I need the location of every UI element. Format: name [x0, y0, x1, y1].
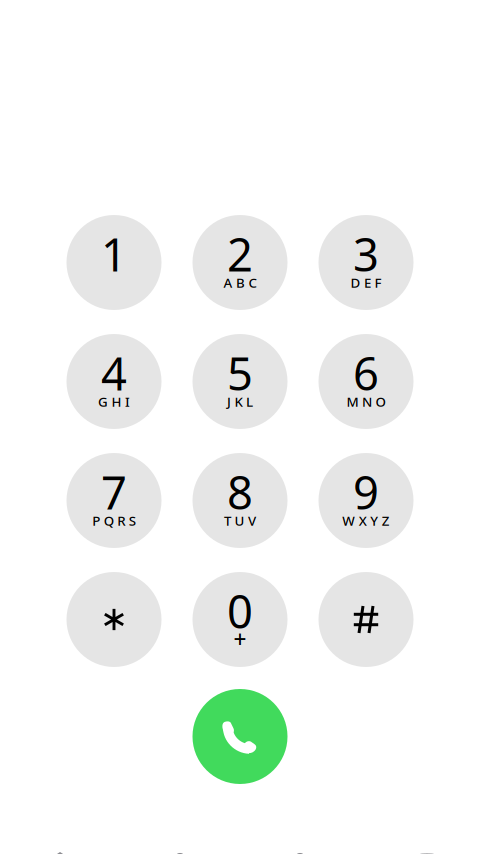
button[interactable]: 9 — [318, 453, 413, 548]
button[interactable]: 4 — [66, 334, 161, 429]
button[interactable]: Call — [192, 689, 287, 784]
staticText: JKL — [227, 393, 253, 410]
button[interactable]: 8 — [192, 453, 287, 548]
button[interactable]: Contacts — [240, 852, 360, 854]
staticText: 0 — [227, 581, 253, 641]
button[interactable]: 6 — [318, 334, 413, 429]
staticText: 2 — [227, 224, 253, 284]
staticText: 7 — [101, 462, 127, 522]
button[interactable]: 7 — [66, 453, 161, 548]
staticText: PQRS — [92, 512, 136, 529]
staticText: 1 — [101, 224, 127, 284]
staticText: 4 — [101, 343, 127, 403]
staticText: GHI — [98, 393, 130, 410]
button[interactable]: Star — [66, 572, 161, 667]
button[interactable]: 0 — [192, 572, 287, 667]
button[interactable]: 5 — [192, 334, 287, 429]
button[interactable]: 3 — [318, 215, 413, 310]
staticText: 3 — [353, 224, 379, 284]
staticText: 5 — [227, 343, 253, 403]
button[interactable]: Keypad — [360, 852, 480, 854]
staticText: 9 — [353, 462, 379, 522]
button[interactable]: Pound — [318, 572, 413, 667]
staticText: + — [233, 624, 246, 654]
button[interactable]: Recents — [120, 852, 240, 854]
staticText: 6 — [353, 343, 379, 403]
staticText: DEF — [350, 274, 381, 291]
button[interactable]: Favorites — [0, 852, 120, 854]
staticText: TUV — [224, 512, 256, 529]
staticText: ABC — [223, 274, 256, 291]
staticText: MNO — [346, 393, 385, 410]
button[interactable]: 2 — [192, 215, 287, 310]
button[interactable]: 1 — [66, 215, 161, 310]
staticText: 8 — [227, 462, 253, 522]
staticText: WXYZ — [342, 512, 390, 529]
